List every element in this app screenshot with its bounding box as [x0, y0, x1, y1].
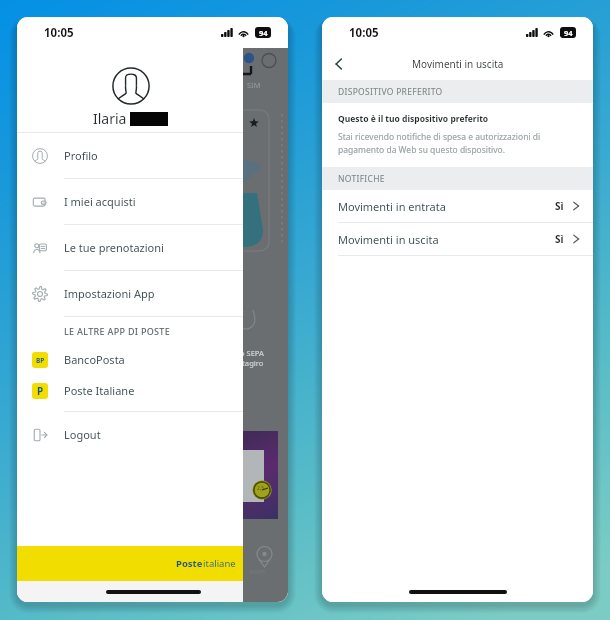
staticText: 94 [564, 28, 573, 38]
staticText: Stai ricevendo notifiche di spesa e auto… [338, 131, 541, 156]
staticText: tagiro [242, 358, 264, 368]
button[interactable]: Logout [17, 412, 243, 457]
staticText: Le tue prenotazioni [64, 240, 164, 255]
staticText: 10:05 [349, 25, 379, 41]
button[interactable]: Movimenti in uscita [322, 223, 593, 255]
staticText: DISPOSITIVO PREFERITO [338, 86, 443, 98]
staticText: italiane [203, 557, 236, 570]
staticText: Poste Italiane [64, 383, 135, 398]
staticText: Movimenti in uscita [338, 232, 439, 247]
staticText: Logout [64, 427, 101, 442]
staticText: LE ALTRE APP DI POSTE [64, 325, 170, 337]
button[interactable]: Impostazioni App [17, 271, 243, 316]
button[interactable]: Back [323, 48, 355, 80]
staticText: I miei acquisti [64, 194, 136, 209]
staticText: 94 [259, 28, 268, 38]
staticText: BancoPosta [64, 352, 125, 367]
staticText: 10:05 [44, 25, 74, 41]
staticText: P [37, 384, 44, 398]
staticText: SIM [247, 80, 261, 90]
button[interactable]: BP [17, 344, 243, 375]
staticText: Movimenti in entrata [338, 199, 446, 214]
staticText: 2,5 [257, 485, 265, 492]
button[interactable]: P [17, 375, 243, 406]
staticText: Movimenti in uscita [412, 57, 504, 71]
staticText: o SEPA [240, 348, 264, 358]
staticText: Questo è il tuo dispositivo preferito [338, 113, 489, 125]
button[interactable]: Le tue prenotazioni [17, 225, 243, 270]
staticText: Profilo [64, 148, 98, 163]
staticText: Ilaria [93, 109, 127, 128]
button[interactable]: Movimenti in entrata [322, 190, 593, 222]
staticText: Impostazioni App [64, 286, 155, 301]
staticText: Sì [555, 199, 564, 213]
button[interactable]: I miei acquisti [17, 179, 243, 224]
staticText: NOTIFICHE [338, 173, 385, 185]
staticText: BP [36, 356, 45, 365]
staticText: Poste [176, 557, 203, 570]
staticText: Sì [555, 232, 564, 246]
button[interactable]: Profilo [17, 133, 243, 178]
